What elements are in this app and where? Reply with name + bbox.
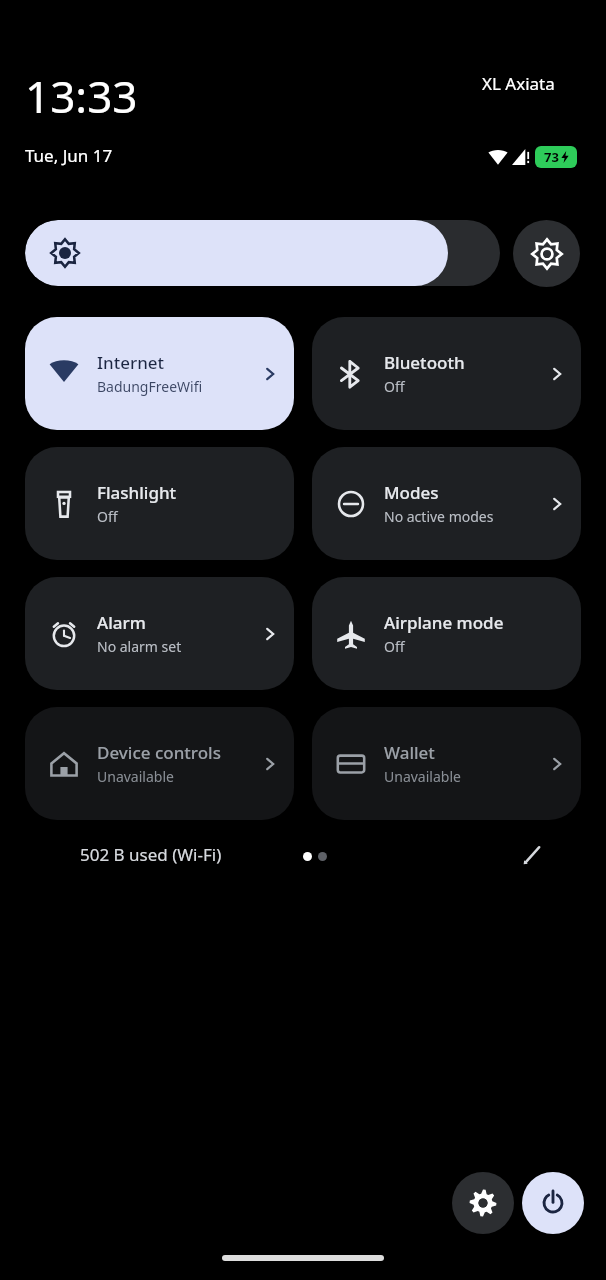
button[interactable]: Wallet [312, 707, 581, 820]
staticText: 73 [544, 148, 559, 166]
button[interactable]: Device controls [25, 707, 294, 820]
staticText: Modes [384, 481, 439, 504]
button[interactable]: Settings [452, 1172, 514, 1234]
staticText: Internet [97, 351, 165, 374]
staticText: Unavailable [97, 767, 174, 786]
staticText: No alarm set [97, 637, 182, 656]
staticText: Device controls [97, 741, 221, 764]
staticText: Wallet [384, 741, 435, 764]
staticText: Flashlight [97, 481, 177, 504]
staticText: Bluetooth [384, 351, 465, 374]
staticText: Off [384, 637, 405, 656]
button[interactable]: Modes [312, 447, 581, 560]
staticText: 502 B used (Wi-Fi) [80, 843, 222, 866]
button[interactable]: Brightness settings [513, 220, 580, 287]
button[interactable]: Flashlight [25, 447, 294, 560]
button[interactable]: Power [522, 1172, 584, 1234]
staticText: Alarm [97, 611, 146, 634]
staticText: Airplane mode [384, 611, 504, 634]
button[interactable]: Edit tiles [510, 832, 556, 878]
staticText: BadungFreeWifi [97, 377, 203, 396]
staticText: Off [384, 377, 405, 396]
button[interactable]: Airplane mode [312, 577, 581, 690]
button[interactable]: Alarm [25, 577, 294, 690]
staticText: 13:33 [25, 66, 138, 126]
staticText: Off [97, 507, 118, 526]
button[interactable]: Internet [25, 317, 294, 430]
staticText: Tue, Jun 17 [25, 144, 113, 167]
staticText: No active modes [384, 507, 494, 526]
button[interactable]: Bluetooth [312, 317, 581, 430]
staticText: Unavailable [384, 767, 461, 786]
staticText: XL Axiata [482, 72, 555, 95]
button[interactable]: Brightness [25, 220, 500, 286]
